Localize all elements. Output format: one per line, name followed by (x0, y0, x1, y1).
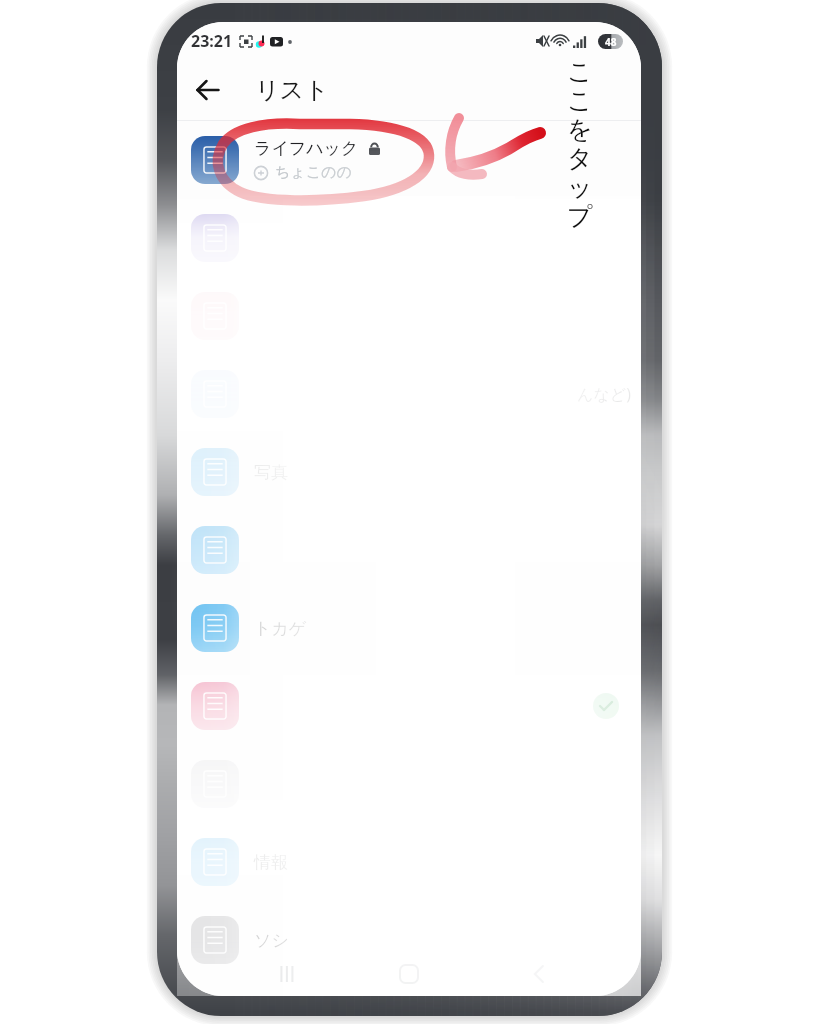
staticText: ちょこのの (275, 163, 352, 182)
staticText: 写真 (254, 462, 288, 483)
button[interactable]: ライフハック (177, 121, 641, 199)
button[interactable] (177, 199, 641, 277)
staticText: ッ (567, 172, 593, 201)
staticText: ソシ (254, 930, 289, 951)
staticText: んなど) (577, 383, 631, 405)
button[interactable]: ソシ (177, 901, 641, 979)
staticText: を (567, 114, 593, 143)
staticText: ライフハック (254, 138, 359, 159)
staticText: プ (567, 201, 593, 230)
staticText: 23:21 (191, 30, 233, 52)
staticText: 48 (605, 35, 617, 49)
staticText: 情報 (254, 852, 288, 873)
button[interactable]: Back (186, 68, 230, 112)
button[interactable] (177, 511, 641, 589)
staticText: こ (567, 56, 593, 85)
staticText: タ (567, 143, 593, 172)
staticText: リスト (255, 75, 329, 105)
staticText: トカゲ (254, 618, 307, 639)
staticText: こ (567, 85, 593, 114)
button[interactable]: 写真 (177, 433, 641, 511)
button[interactable]: トカゲ (177, 589, 641, 667)
button[interactable]: 情報 (177, 823, 641, 901)
button[interactable] (177, 667, 641, 745)
